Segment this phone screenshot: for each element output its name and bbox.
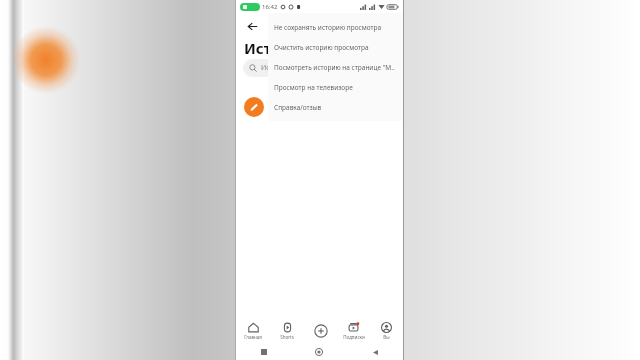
button[interactable]: Не сохранять историю просмотра bbox=[268, 17, 403, 37]
staticText: Не сохранять историю просмотра bbox=[274, 23, 382, 32]
staticText: Справка/отзыв bbox=[274, 103, 322, 112]
button[interactable]: Recents bbox=[256, 344, 272, 360]
button[interactable]: Create bbox=[304, 318, 337, 344]
button[interactable]: Вы bbox=[370, 318, 403, 344]
staticText: Просмотр на телевизоре bbox=[274, 83, 353, 92]
staticText: Посмотреть историю на странице "М.. bbox=[274, 63, 395, 72]
button[interactable]: Edit bbox=[244, 97, 264, 117]
button[interactable]: Back bbox=[242, 16, 262, 36]
button[interactable]: Справка/отзыв bbox=[268, 97, 403, 117]
button[interactable]: Очистить историю просмотра bbox=[268, 37, 403, 57]
staticText: Подписки bbox=[343, 334, 365, 340]
button[interactable]: Искать в истории bbox=[243, 59, 396, 77]
staticText: История bbox=[244, 38, 310, 58]
staticText: Вы bbox=[383, 334, 390, 340]
staticText: 16:42 bbox=[262, 3, 278, 11]
staticText: Искать в истории bbox=[261, 63, 320, 73]
button[interactable]: Shorts bbox=[270, 318, 304, 344]
button[interactable]: Подписки bbox=[337, 318, 370, 344]
staticText: Очистить историю просмотра bbox=[274, 43, 369, 52]
button[interactable]: Просмотр на телевизоре bbox=[268, 77, 403, 97]
button[interactable]: Home bbox=[311, 344, 327, 360]
staticText: Shorts bbox=[280, 334, 294, 340]
button[interactable]: Посмотреть историю на странице "М.. bbox=[268, 57, 403, 77]
button[interactable]: Back bbox=[367, 344, 383, 360]
button[interactable]: Главная bbox=[236, 318, 270, 344]
staticText: Главная bbox=[244, 334, 262, 340]
